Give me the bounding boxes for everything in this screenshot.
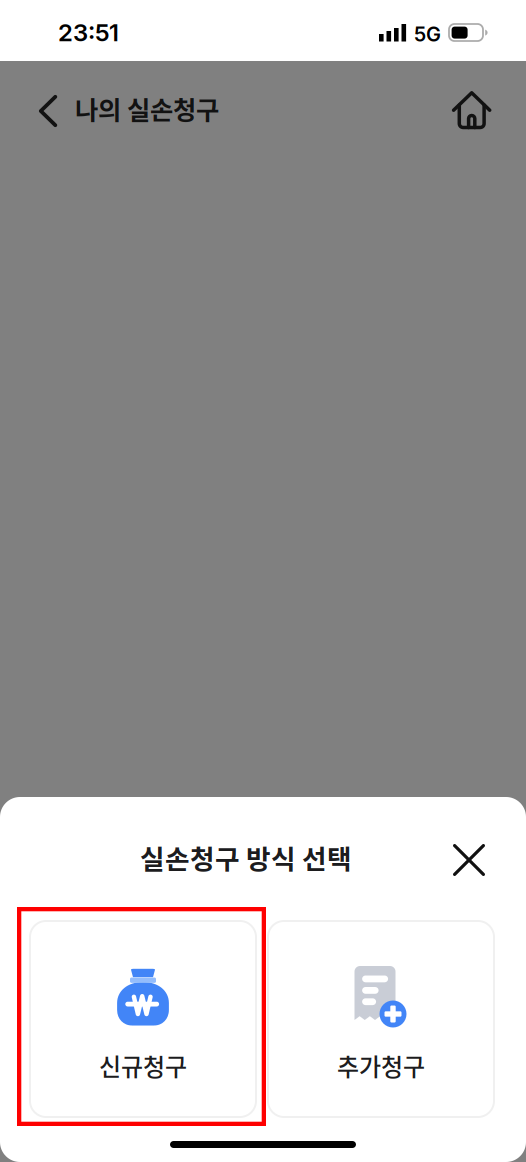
staticText: 신규청구 bbox=[99, 1048, 187, 1083]
button[interactable]: Close bbox=[440, 831, 498, 889]
button[interactable]: 신규청구 bbox=[30, 921, 256, 1117]
button[interactable]: Back bbox=[20, 80, 78, 142]
staticText: 23:51 bbox=[58, 18, 119, 47]
staticText: 5G bbox=[414, 22, 441, 46]
button[interactable]: 추가청구 bbox=[268, 921, 494, 1117]
staticText: 나의 실손청구 bbox=[75, 90, 219, 127]
button[interactable]: Home bbox=[441, 80, 503, 142]
staticText: 실손청구 방식 선택 bbox=[140, 838, 352, 877]
staticText: 추가청구 bbox=[337, 1048, 425, 1083]
